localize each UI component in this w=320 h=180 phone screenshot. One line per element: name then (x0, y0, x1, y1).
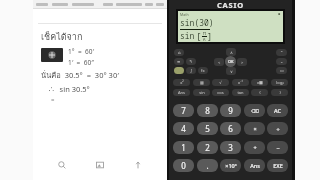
button[interactable]: Direction > (237, 58, 247, 66)
staticText: 6 (203, 37, 206, 41)
button[interactable]: Key ⌫ (244, 104, 265, 117)
staticText: > (241, 60, 244, 65)
button[interactable]: √ (212, 79, 229, 86)
button[interactable] (36, 3, 48, 6)
button[interactable]: Direction ∧ (226, 48, 236, 56)
staticText: 1′ = 60″ (68, 58, 94, 67)
button[interactable]: Direction < (214, 58, 224, 66)
staticText: 3 (228, 142, 233, 153)
button[interactable]: Key 0 (173, 159, 194, 172)
button[interactable]: Key ×10ˣ (220, 159, 241, 172)
staticText: [ (196, 30, 202, 41)
button[interactable]: Direction ∨ (226, 67, 236, 75)
button[interactable]: Key 9 (220, 104, 241, 117)
staticText: CASIO (217, 0, 244, 9)
button[interactable]: ⌂ (174, 49, 184, 56)
staticText: 7 (181, 105, 186, 116)
button[interactable]: Key × (244, 122, 265, 135)
staticText: × (253, 125, 257, 132)
staticText: 1 (181, 142, 186, 153)
staticText: ) (279, 90, 281, 95)
staticText: OK (228, 59, 234, 64)
button[interactable]: Power (174, 67, 184, 74)
button[interactable]: Key 6 (220, 122, 241, 135)
button[interactable]: Key AC (267, 104, 288, 117)
button[interactable]: ⌃ (276, 49, 287, 56)
button[interactable]: ▦ (193, 79, 210, 86)
button[interactable]: Gallery (93, 158, 107, 172)
button[interactable]: Key 7 (173, 104, 194, 117)
button[interactable]: x² (173, 79, 190, 86)
button[interactable]: Key . (197, 159, 218, 172)
button[interactable]: Search (55, 158, 69, 172)
staticText: ∴ sin 30.5° (49, 84, 90, 94)
button[interactable]: Key EXE (267, 159, 288, 172)
staticText: x² (180, 80, 184, 85)
staticText: AC (274, 107, 281, 114)
staticText: x⁻¹ (238, 80, 243, 85)
button[interactable]: Share (131, 158, 145, 172)
button[interactable]: ) (271, 89, 288, 96)
button[interactable] (145, 3, 153, 6)
staticText: < (218, 60, 221, 65)
button[interactable]: fx (198, 67, 208, 74)
button[interactable]: ⌄ (276, 58, 287, 65)
staticText: ∧ (230, 50, 233, 55)
button[interactable]: ∫ (186, 67, 196, 74)
staticText: − (276, 144, 280, 151)
button[interactable]: เช็คได้จาก (41, 28, 161, 154)
staticText: x■ (257, 80, 263, 85)
staticText: ⌫ (251, 108, 259, 114)
button[interactable]: Key 8 (197, 104, 218, 117)
button[interactable]: Key 4 (173, 122, 194, 135)
button[interactable]: x■ (251, 79, 268, 86)
button[interactable]: x⁻¹ (232, 79, 249, 86)
button[interactable]: ( (251, 89, 268, 96)
button[interactable]: Key Ans (244, 159, 265, 172)
button[interactable]: cos (212, 89, 229, 96)
button[interactable]: Key + (244, 141, 265, 154)
staticText: Ans (178, 90, 185, 95)
staticText: เช็คได้จาก (41, 30, 83, 44)
button[interactable]: OK (225, 56, 236, 67)
staticText: cos (217, 90, 224, 95)
button[interactable]: Key 1 (173, 141, 194, 154)
button[interactable]: Key 5 (197, 122, 218, 135)
staticText: 6 (228, 123, 233, 134)
staticText: √ (219, 80, 222, 85)
button[interactable]: Key 3 (220, 141, 241, 154)
staticText: ÷ (276, 125, 280, 132)
button[interactable]: Key ÷ (267, 122, 288, 135)
staticText: . (206, 160, 209, 171)
staticText: 2 (205, 142, 210, 153)
button[interactable]: Key − (267, 141, 288, 154)
button[interactable] (52, 3, 68, 6)
staticText: ↰ (189, 59, 193, 64)
button[interactable]: ▭ (276, 67, 287, 74)
staticText: ▪ (278, 12, 281, 16)
staticText: sin (199, 90, 205, 95)
staticText: ⌄ (280, 59, 284, 64)
staticText: Ans (250, 162, 260, 169)
staticText: 1° = 60′ (68, 47, 94, 56)
button[interactable]: Math (178, 11, 283, 42)
button[interactable] (103, 3, 113, 6)
button[interactable]: ↰ (186, 58, 196, 65)
button[interactable]: sin (193, 89, 210, 96)
staticText: ∫ (190, 68, 193, 73)
button[interactable]: ≡ (174, 58, 184, 65)
staticText: tan (237, 90, 244, 95)
button[interactable]: Ans (173, 89, 190, 96)
button[interactable]: tan (232, 89, 249, 96)
staticText: นั่นคือ 30.5° = 30° 30′ (41, 69, 119, 81)
button[interactable] (156, 3, 164, 6)
staticText: ( (259, 90, 261, 95)
button[interactable]: Attached image (41, 48, 63, 62)
button[interactable]: Key 2 (197, 141, 218, 154)
staticText: Math (180, 12, 189, 17)
button[interactable]: logᵦ (271, 79, 288, 86)
staticText: ≡ (177, 59, 181, 64)
staticText: + (253, 144, 257, 151)
